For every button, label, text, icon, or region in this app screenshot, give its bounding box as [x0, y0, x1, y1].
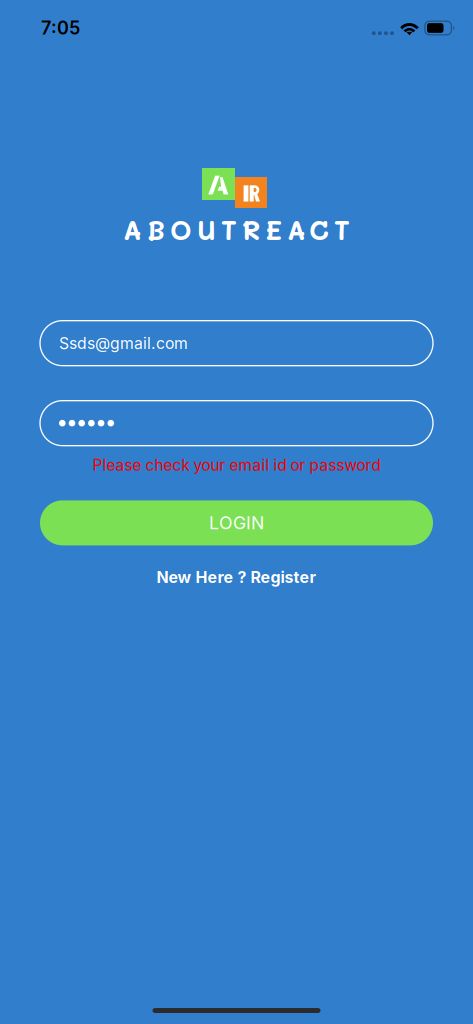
- staticText: Please check your email id or password: [92, 456, 380, 474]
- staticText: Ssds@gmail.com: [59, 334, 188, 353]
- staticText: ABOUTREACT: [123, 212, 350, 247]
- button[interactable]: [40, 401, 433, 446]
- button[interactable]: LOGIN: [40, 500, 433, 545]
- staticText: 7:05: [41, 17, 80, 39]
- button[interactable]: Ssds@gmail.com: [40, 321, 433, 366]
- button[interactable]: New Here ? Register: [156, 567, 316, 587]
- staticText: New Here ? Register: [156, 567, 316, 587]
- staticText: LOGIN: [209, 512, 264, 534]
